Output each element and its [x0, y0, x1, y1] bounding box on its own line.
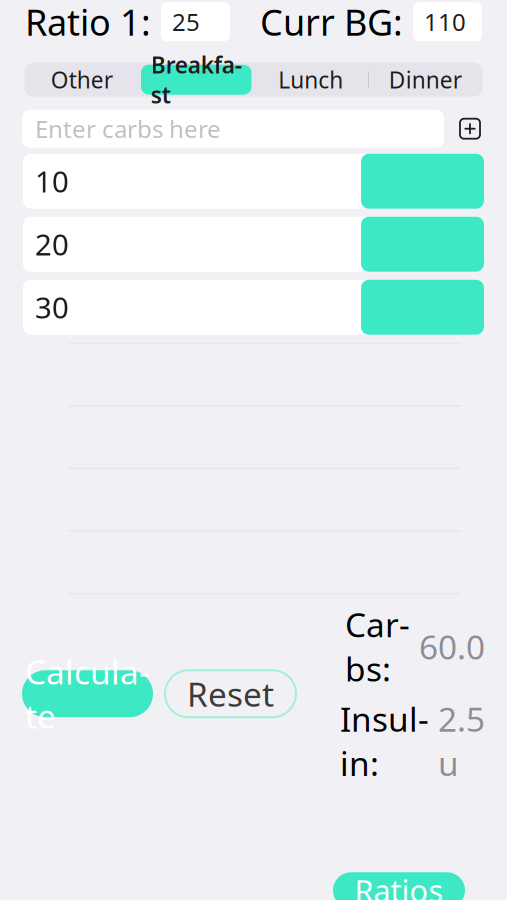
staticText: 10: [35, 162, 69, 201]
staticText: 60.0: [419, 624, 485, 669]
button[interactable]: Reset: [165, 670, 296, 717]
button[interactable]: 110: [413, 2, 482, 41]
button[interactable]: Breakfast: [139, 63, 253, 97]
staticText: Dinner: [389, 65, 462, 95]
button[interactable]: 10: [23, 154, 484, 209]
staticText: Breakfast: [151, 50, 242, 110]
button[interactable]: 25: [161, 2, 230, 41]
staticText: Calculate: [25, 649, 150, 738]
staticText: Curr BG:: [260, 0, 403, 46]
staticText: 20: [35, 225, 69, 264]
button[interactable]: Dinner: [368, 63, 482, 97]
button[interactable]: Add carbs: [455, 114, 485, 144]
staticText: Ratios: [354, 870, 443, 900]
button[interactable]: Calculate: [22, 670, 153, 717]
staticText: Insulin:: [340, 697, 429, 785]
staticText: Carbs:: [345, 602, 410, 691]
staticText: Enter carbs here: [35, 113, 221, 145]
staticText: 2.5 u: [438, 697, 485, 785]
staticText: 110: [424, 6, 466, 38]
staticText: 30: [35, 288, 69, 327]
button[interactable]: 20: [23, 217, 484, 272]
button[interactable]: Ratios: [333, 872, 465, 900]
button[interactable]: Other: [24, 63, 139, 97]
button[interactable]: 30: [23, 280, 484, 335]
staticText: Ratio 1:: [25, 0, 151, 46]
staticText: Other: [51, 65, 113, 95]
button[interactable]: Lunch: [253, 63, 368, 97]
staticText: Reset: [187, 672, 274, 716]
staticText: Lunch: [278, 65, 343, 95]
staticText: 25: [172, 6, 200, 38]
